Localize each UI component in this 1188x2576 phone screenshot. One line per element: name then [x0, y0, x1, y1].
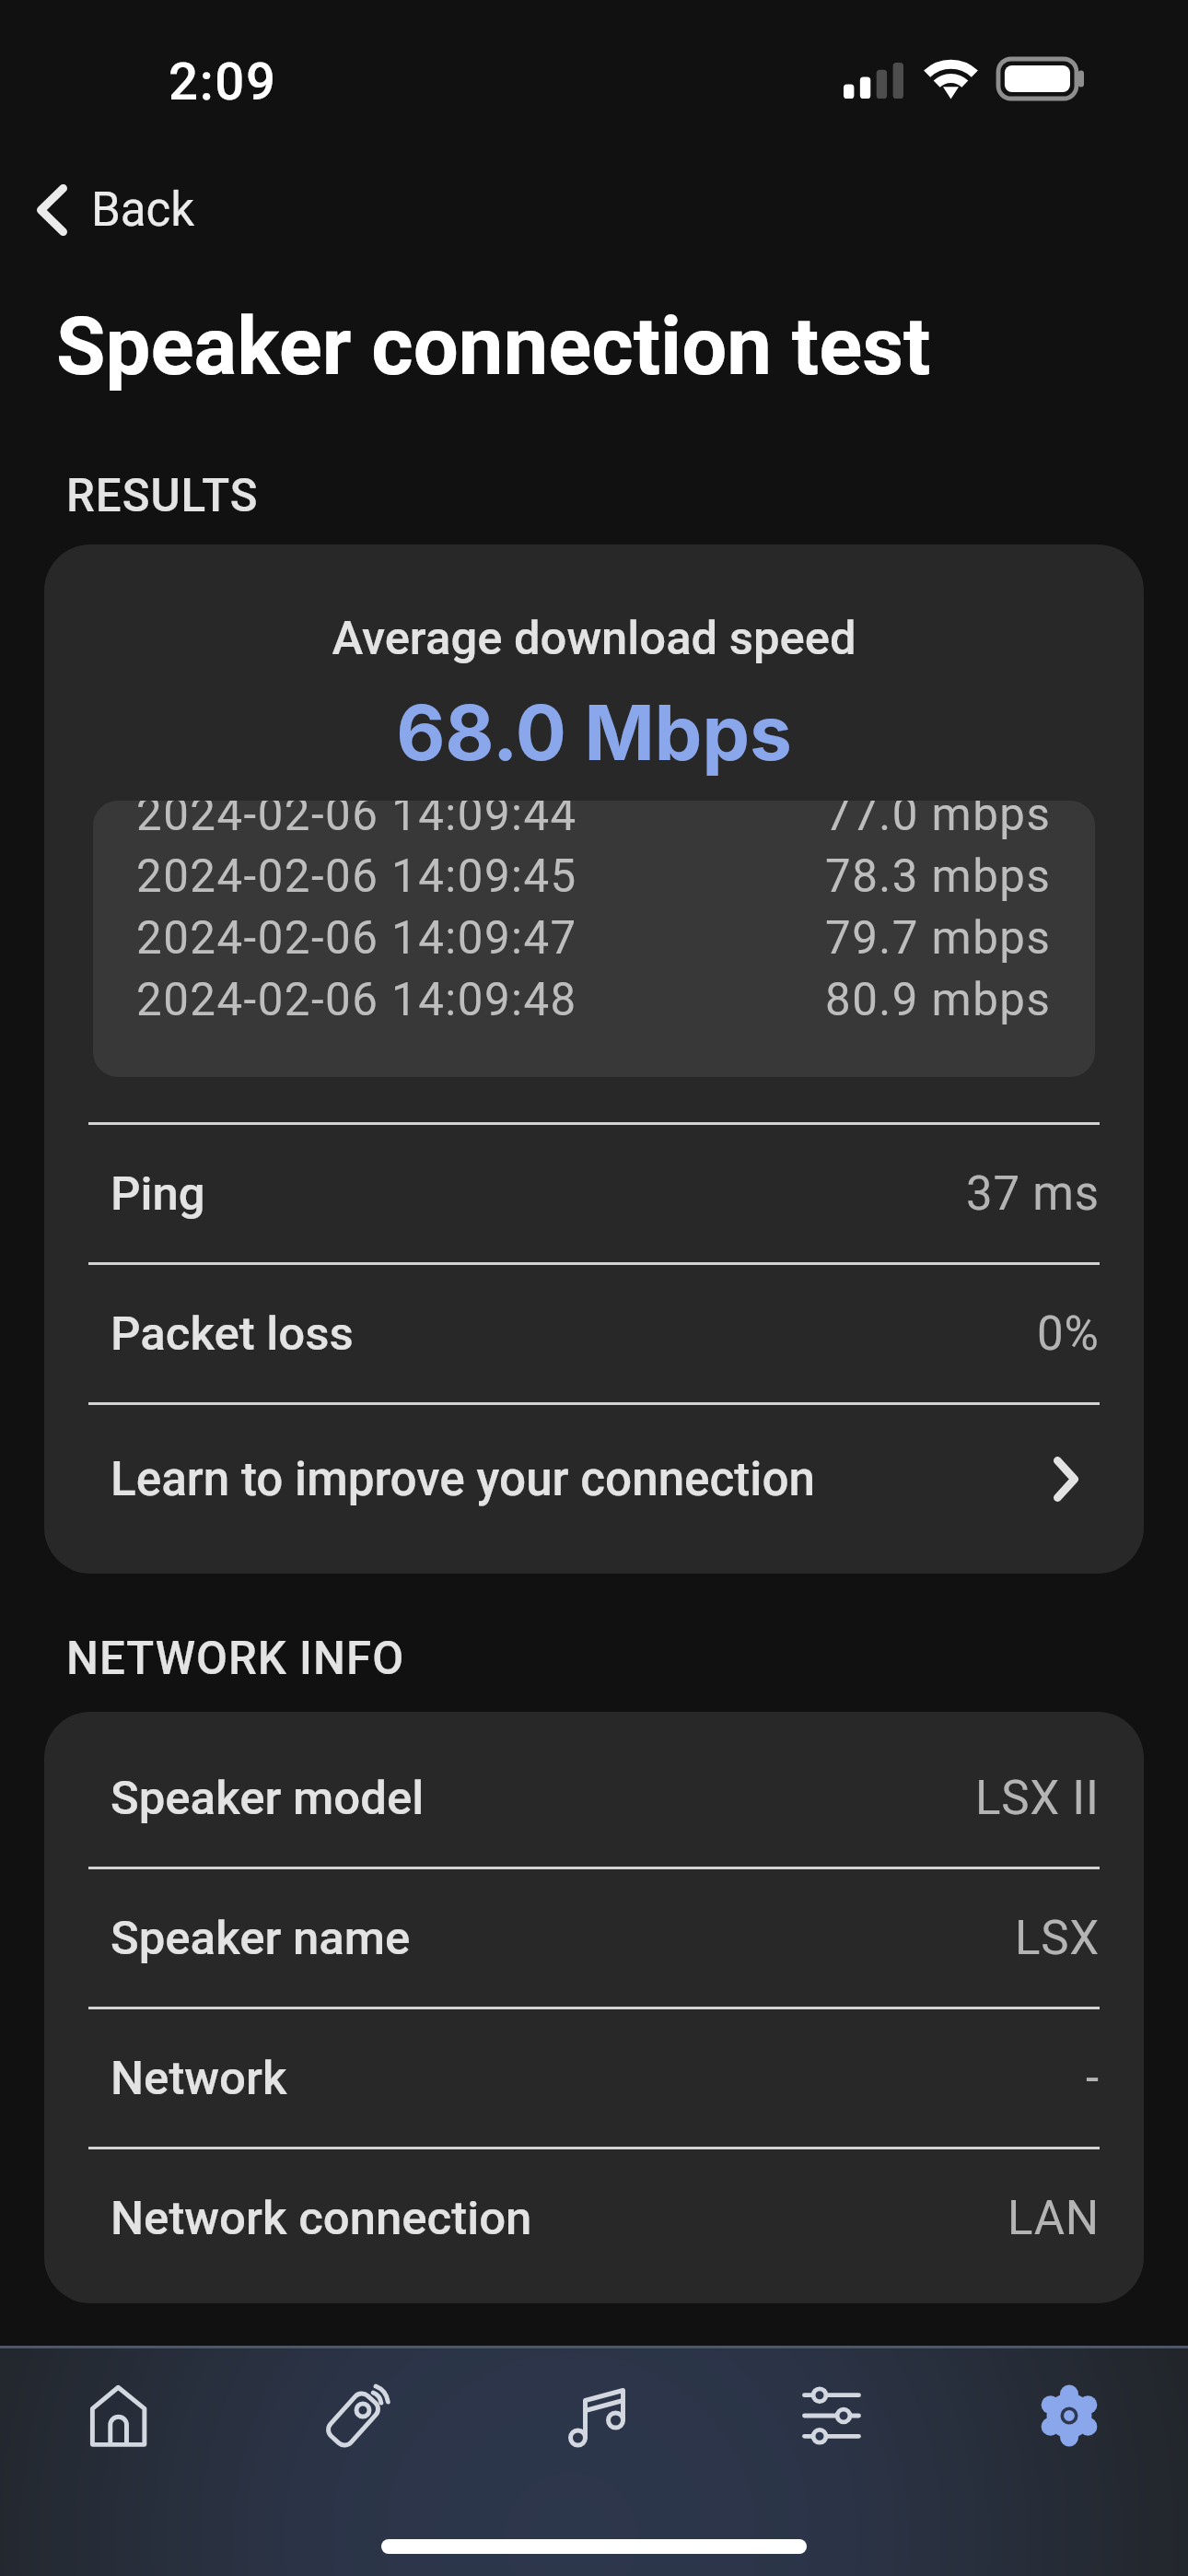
staticText: NETWORK INFO: [66, 1632, 405, 1685]
button[interactable]: Ping: [88, 1125, 1100, 1262]
staticText: Speaker name: [111, 1911, 411, 1966]
staticText: 2024-02-06 14:09:44: [136, 801, 577, 841]
staticText: Network: [111, 2051, 287, 2106]
staticText: 37 ms: [966, 1166, 1100, 1222]
staticText: RESULTS: [66, 469, 259, 522]
staticText: Packet loss: [111, 1306, 354, 1362]
staticText: 0%: [1037, 1306, 1100, 1362]
staticText: 77.0 mbps: [825, 801, 1052, 841]
staticText: 2024-02-06 14:09:47: [136, 911, 577, 965]
button[interactable]: Network: [88, 2009, 1100, 2147]
button[interactable]: Equalizer: [713, 2352, 950, 2479]
staticText: 2024-02-06 14:09:48: [136, 973, 577, 1026]
button[interactable]: Learn to improve your connection: [88, 1405, 1100, 1553]
button[interactable]: Speaker model: [88, 1729, 1100, 1867]
button[interactable]: Speaker name: [88, 1869, 1100, 2007]
staticText: 79.7 mbps: [825, 911, 1052, 965]
staticText: LSX: [1015, 1911, 1100, 1966]
staticText: Average download speed: [44, 611, 1144, 665]
staticText: 80.9 mbps: [825, 973, 1052, 1026]
staticText: 68.0 Mbps: [44, 687, 1144, 779]
staticText: 78.3 mbps: [825, 849, 1052, 903]
button[interactable]: Music: [475, 2352, 713, 2479]
staticText: 2:09: [169, 52, 277, 112]
button[interactable]: Back: [0, 155, 1188, 265]
button[interactable]: Settings: [950, 2352, 1188, 2479]
staticText: Ping: [111, 1166, 205, 1222]
button[interactable]: Network connection: [88, 2149, 1100, 2287]
button[interactable]: Remote: [238, 2352, 475, 2479]
button[interactable]: Packet loss: [88, 1265, 1100, 1402]
staticText: Learn to improve your connection: [111, 1452, 815, 1507]
staticText: Back: [91, 182, 195, 238]
staticText: Network connection: [111, 2191, 532, 2246]
button[interactable]: Home: [0, 2352, 238, 2479]
staticText: Speaker model: [111, 1771, 425, 1826]
staticText: -: [1086, 2051, 1100, 2106]
staticText: Speaker connection test: [56, 299, 931, 393]
staticText: LSX II: [975, 1771, 1100, 1826]
staticText: 2024-02-06 14:09:45: [136, 849, 577, 903]
staticText: LAN: [1007, 2191, 1100, 2246]
